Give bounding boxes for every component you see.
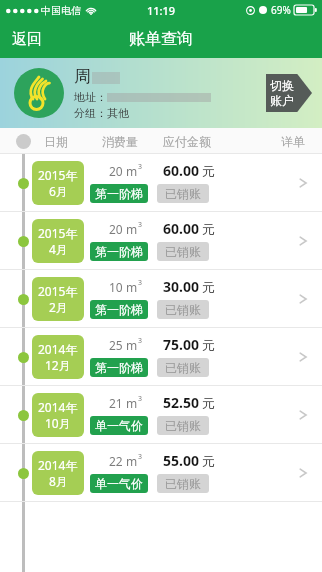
staticText: 已销账 — [165, 186, 201, 201]
staticText: 25 — [109, 337, 123, 353]
staticText: 20 — [109, 221, 123, 237]
other: 查看详单 — [296, 292, 310, 306]
staticText: 8月 — [49, 473, 68, 489]
other: 查看详单 — [296, 466, 310, 480]
staticText: 已销账 — [165, 360, 201, 375]
button[interactable]: 2015年 — [0, 212, 322, 270]
staticText: 详单 — [281, 134, 305, 149]
button[interactable]: 切换账户 — [266, 74, 312, 112]
staticText: 3 — [138, 278, 143, 288]
staticText: 已销账 — [165, 244, 201, 259]
staticText: 中国电信 — [41, 4, 81, 17]
staticText: 已销账 — [165, 476, 201, 491]
staticText: 2月 — [49, 299, 68, 315]
staticText: 账户 — [270, 93, 294, 108]
staticText: 2015年 — [38, 167, 78, 183]
staticText: 10月 — [45, 415, 71, 431]
staticText: 2014年 — [38, 341, 78, 357]
staticText: 切换 — [270, 78, 294, 93]
staticText: 2015年 — [38, 283, 78, 299]
staticText: 元 — [202, 221, 215, 237]
staticText: 元 — [202, 279, 215, 295]
button[interactable]: 2014年 — [0, 444, 322, 502]
staticText: 元 — [202, 337, 215, 353]
button[interactable]: 2014年 — [0, 328, 322, 386]
staticText: 22 — [109, 453, 123, 469]
staticText: 11:19 — [147, 3, 176, 18]
staticText: 元 — [202, 453, 215, 469]
staticText: m — [126, 395, 138, 411]
staticText: m — [126, 337, 138, 353]
other: 查看详单 — [296, 234, 310, 248]
staticText: 第一阶梯 — [95, 360, 143, 375]
staticText: 分组：其他 — [74, 106, 129, 120]
button[interactable]: 2015年 — [0, 270, 322, 328]
staticText: 第一阶梯 — [95, 302, 143, 317]
staticText: 日期 — [44, 134, 68, 149]
staticText: 单一气价 — [95, 476, 143, 491]
staticText: 3 — [138, 336, 143, 346]
staticText: 单一气价 — [95, 418, 143, 433]
staticText: 4月 — [49, 241, 68, 257]
button[interactable]: 2014年 — [0, 386, 322, 444]
staticText: 6月 — [49, 183, 68, 199]
staticText: 10 — [109, 279, 123, 295]
staticText: m — [126, 279, 138, 295]
staticText: 2014年 — [38, 457, 78, 473]
staticText: 12月 — [45, 357, 71, 373]
staticText: 60.00 — [163, 219, 199, 238]
staticText: 60.00 — [163, 161, 199, 180]
staticText: 周 — [74, 66, 91, 87]
other: 查看详单 — [296, 350, 310, 364]
staticText: 元 — [202, 395, 215, 411]
staticText: 元 — [202, 163, 215, 179]
staticText: 55.00 — [163, 451, 199, 470]
staticText: 21 — [109, 395, 123, 411]
staticText: 20 — [109, 163, 123, 179]
staticText: 2014年 — [38, 399, 78, 415]
button[interactable]: 2015年 — [0, 154, 322, 212]
staticText: 账单查询 — [129, 29, 193, 49]
staticText: 第一阶梯 — [95, 244, 143, 259]
staticText: 30.00 — [163, 277, 199, 296]
staticText: 2015年 — [38, 225, 78, 241]
staticText: 返回 — [12, 30, 42, 49]
staticText: m — [126, 453, 138, 469]
staticText: 69% — [271, 3, 291, 17]
staticText: 第一阶梯 — [95, 186, 143, 201]
staticText: m — [126, 221, 138, 237]
staticText: 应付金额 — [163, 134, 211, 149]
staticText: 3 — [138, 162, 143, 172]
staticText: 消费量 — [102, 134, 138, 149]
staticText: 3 — [138, 452, 143, 462]
staticText: 地址： — [74, 90, 107, 104]
staticText: 3 — [138, 394, 143, 404]
staticText: 3 — [138, 220, 143, 230]
other: 查看详单 — [296, 408, 310, 422]
staticText: m — [126, 163, 138, 179]
staticText: 已销账 — [165, 418, 201, 433]
other: 查看详单 — [296, 176, 310, 190]
staticText: 75.00 — [163, 335, 199, 354]
staticText: 已销账 — [165, 302, 201, 317]
staticText: 52.50 — [163, 393, 199, 412]
button[interactable]: 返回 — [0, 23, 54, 56]
